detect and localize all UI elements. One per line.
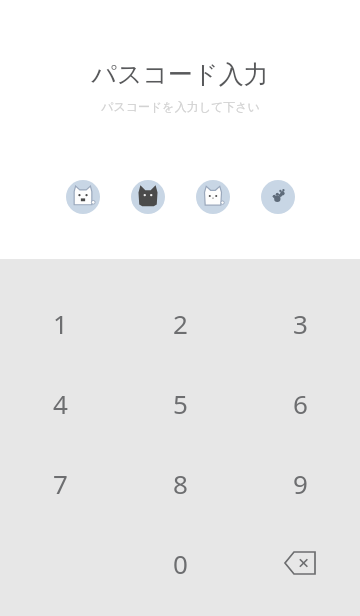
button[interactable]: 7 <box>0 443 120 523</box>
staticText: 1 <box>53 306 68 341</box>
button[interactable]: 5 <box>120 363 240 443</box>
button[interactable]: 6 <box>240 363 360 443</box>
button[interactable]: Delete <box>240 523 360 603</box>
button[interactable]: 0 <box>120 523 240 603</box>
button[interactable]: 9 <box>240 443 360 523</box>
button[interactable]: 8 <box>120 443 240 523</box>
staticText: 3 <box>293 306 308 341</box>
staticText: 5 <box>173 386 188 421</box>
staticText: 7 <box>53 466 68 501</box>
staticText: 0 <box>173 546 188 581</box>
staticText: パスコードを入力して下さい <box>101 99 260 114</box>
staticText: 9 <box>293 466 308 501</box>
button[interactable]: 1 <box>0 283 120 363</box>
staticText: パスコード入力 <box>91 59 269 90</box>
staticText: 6 <box>293 386 308 421</box>
button[interactable]: 4 <box>0 363 120 443</box>
staticText: 4 <box>53 386 68 421</box>
button[interactable]: 3 <box>240 283 360 363</box>
button[interactable]: 2 <box>120 283 240 363</box>
staticText: 2 <box>173 306 188 341</box>
staticText: 8 <box>173 466 188 501</box>
